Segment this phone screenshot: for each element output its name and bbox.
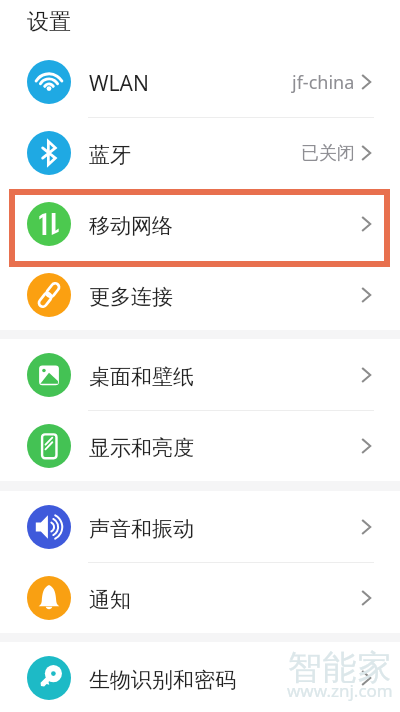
staticText: 桌面和壁纸 xyxy=(89,364,194,390)
other: Open xyxy=(362,368,371,382)
staticText: 通知 xyxy=(89,587,131,613)
other: Open xyxy=(362,520,371,534)
other: Open xyxy=(362,75,371,89)
button[interactable]: 移动网络 xyxy=(0,188,400,259)
button[interactable]: 生物识别和密码 xyxy=(0,642,400,712)
button[interactable]: 声音和振动 xyxy=(0,491,400,562)
staticText: jf-china xyxy=(292,70,355,95)
staticText: 移动网络 xyxy=(89,213,173,239)
staticText: 更多连接 xyxy=(89,284,173,310)
staticText: 已关闭 xyxy=(301,142,355,165)
staticText: 生物识别和密码 xyxy=(89,667,236,693)
button[interactable]: 桌面和壁纸 xyxy=(0,339,400,410)
button[interactable]: 更多连接 xyxy=(0,259,400,330)
other: Open xyxy=(362,288,371,302)
other: Open xyxy=(362,591,371,605)
button[interactable]: 蓝牙 xyxy=(0,117,400,188)
other: Open xyxy=(362,146,371,160)
other: Open xyxy=(362,217,371,231)
staticText: 声音和振动 xyxy=(89,516,194,542)
button[interactable]: 显示和亮度 xyxy=(0,410,400,481)
button[interactable]: WLAN xyxy=(0,46,400,117)
other: Open xyxy=(362,439,371,453)
staticText: 智能家 xyxy=(287,646,392,689)
button[interactable]: 通知 xyxy=(0,562,400,633)
staticText: 显示和亮度 xyxy=(89,435,194,461)
staticText: 蓝牙 xyxy=(89,142,131,168)
staticText: WLAN xyxy=(89,69,149,98)
staticText: 设置 xyxy=(27,8,71,36)
other: Open xyxy=(362,671,371,685)
staticText: www.znj.com xyxy=(287,679,393,702)
